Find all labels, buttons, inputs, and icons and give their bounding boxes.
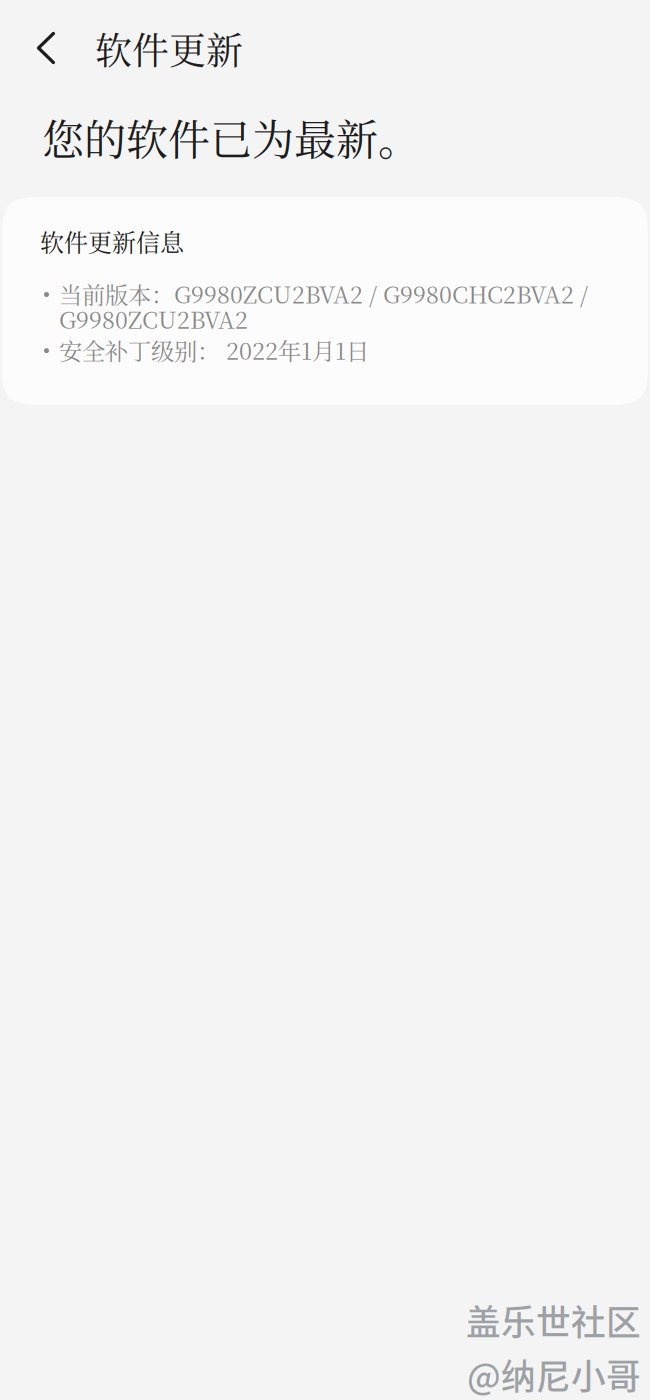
staticText: 盖乐世社区 — [466, 1295, 641, 1345]
staticText: 当前版本：G9980ZCU2BVA2 / G9980CHC2BVA2 / G99… — [59, 281, 588, 331]
staticText: 您的软件已为最新。 — [42, 107, 420, 167]
staticText: 安全补丁级别： 2022年1月1日 — [59, 337, 369, 362]
staticText: @纳尼小哥 — [467, 1349, 641, 1399]
button[interactable]: Back — [24, 20, 68, 76]
button[interactable]: 软件更新 — [87, 16, 251, 81]
staticText: 软件更新信息 — [40, 224, 184, 258]
staticText: 软件更新 — [95, 22, 243, 75]
